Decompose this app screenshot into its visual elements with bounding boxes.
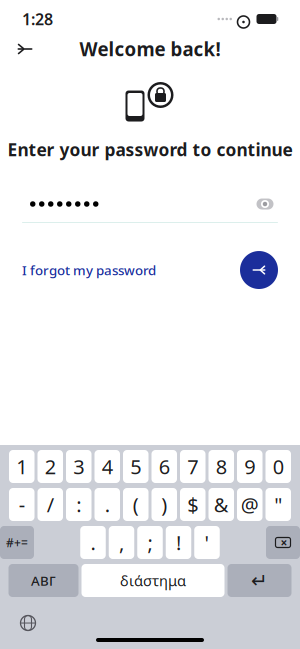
staticText: - <box>19 491 25 518</box>
staticText: 3 <box>73 453 84 480</box>
button[interactable]: 9 <box>237 450 262 483</box>
button[interactable]: 3 <box>66 450 91 483</box>
staticText: 9 <box>244 453 255 480</box>
staticText: Enter your password to continue <box>7 138 292 161</box>
staticText: & <box>214 491 229 518</box>
button[interactable]: & <box>208 488 234 521</box>
button[interactable]: ( <box>123 488 148 521</box>
staticText: ! <box>176 529 181 556</box>
button[interactable]: Show password <box>252 193 278 215</box>
staticText: I forgot my password <box>22 261 156 279</box>
button[interactable]: ' <box>194 526 220 559</box>
button[interactable]: 5 <box>123 450 148 483</box>
staticText: × <box>280 534 287 550</box>
staticText: διάστημα <box>120 571 186 590</box>
staticText: . <box>105 491 110 518</box>
staticText: @ <box>241 491 259 518</box>
staticText: ) <box>161 491 167 518</box>
button[interactable]: . <box>80 526 106 559</box>
staticText: 2 <box>45 453 56 480</box>
staticText: . <box>90 529 95 556</box>
button[interactable]: " <box>265 488 291 521</box>
staticText: 8 <box>216 453 227 480</box>
button[interactable]: Back <box>8 35 42 63</box>
button[interactable]: 8 <box>208 450 234 483</box>
staticText: 4 <box>102 453 113 480</box>
staticText: " <box>274 491 282 518</box>
staticText: / <box>47 491 54 518</box>
button[interactable]: Delete <box>266 526 300 559</box>
staticText: ' <box>204 529 209 556</box>
staticText: 1:28 <box>22 8 53 30</box>
button[interactable]: 1 <box>9 450 34 483</box>
button[interactable]: - <box>9 488 34 521</box>
staticText: #+= <box>6 534 28 550</box>
staticText: Welcome back! <box>79 37 220 61</box>
button[interactable]: Continue <box>238 249 280 291</box>
button[interactable]: 2 <box>37 450 63 483</box>
staticText: ΑΒΓ <box>31 572 56 589</box>
button[interactable]: , <box>109 526 134 559</box>
staticText: 6 <box>159 453 170 480</box>
button[interactable]: #+= <box>0 526 34 559</box>
button[interactable]: ΑΒΓ <box>8 564 78 597</box>
button[interactable]: $ <box>180 488 205 521</box>
staticText: $ <box>187 491 198 518</box>
staticText: ; <box>147 529 152 556</box>
button[interactable]: ) <box>151 488 177 521</box>
staticText: 5 <box>130 453 141 480</box>
button[interactable]: Switch keyboard <box>13 609 43 637</box>
button[interactable]: . <box>94 488 120 521</box>
button[interactable]: Return <box>227 564 291 597</box>
staticText: ↵ <box>251 569 268 592</box>
button[interactable]: / <box>37 488 63 521</box>
staticText: ( <box>133 491 139 518</box>
button[interactable]: 0 <box>265 450 291 483</box>
button[interactable]: 6 <box>151 450 177 483</box>
staticText: 1 <box>16 453 27 480</box>
button[interactable]: I forgot my password <box>22 255 156 285</box>
staticText: 0 <box>273 453 284 480</box>
button[interactable]: @ <box>237 488 262 521</box>
staticText: , <box>119 529 124 556</box>
button[interactable]: 7 <box>180 450 205 483</box>
button[interactable]: : <box>66 488 91 521</box>
button[interactable]: ; <box>137 526 163 559</box>
staticText: : <box>76 491 81 518</box>
button[interactable]: 4 <box>94 450 120 483</box>
staticText: 7 <box>187 453 198 480</box>
button[interactable]: ! <box>166 526 191 559</box>
button[interactable]: διάστημα <box>81 564 224 597</box>
